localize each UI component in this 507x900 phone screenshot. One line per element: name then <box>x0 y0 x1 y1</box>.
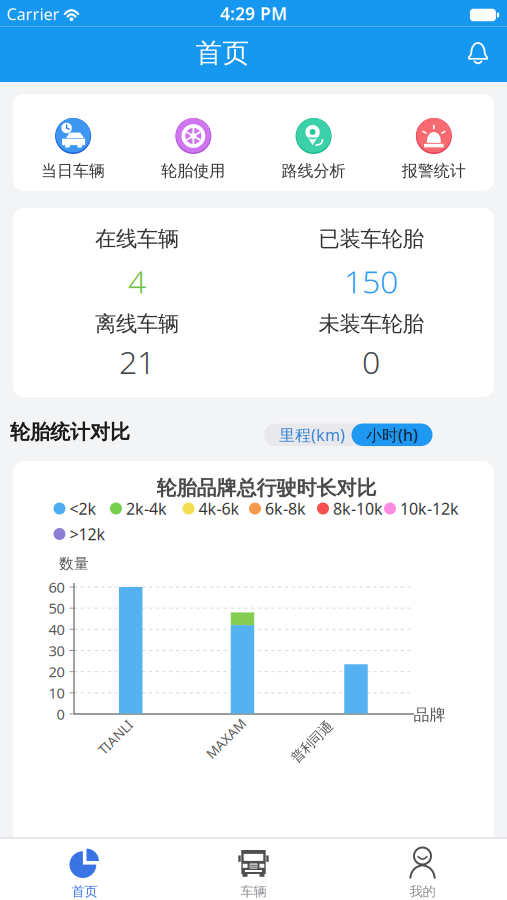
staticText: 未装车轮胎 <box>318 311 423 337</box>
staticText: MAXAM <box>201 730 251 747</box>
staticText: 21 <box>119 340 155 383</box>
staticText: 数量 <box>59 554 89 572</box>
staticText: 我的 <box>409 883 435 900</box>
button[interactable]: 我的 <box>338 841 507 899</box>
staticText: 4k-6k <box>199 498 240 519</box>
staticText: 0 <box>56 704 64 724</box>
button[interactable]: 首页 <box>0 841 169 899</box>
staticText: 20 <box>48 662 64 681</box>
staticText: 40 <box>48 620 64 639</box>
staticText: 30 <box>48 641 64 660</box>
staticText: 4 <box>128 260 146 302</box>
staticText: 在线车辆 <box>95 226 179 252</box>
button[interactable]: 车辆 <box>169 841 338 899</box>
staticText: 普利司通 <box>286 734 338 750</box>
staticText: 6k-8k <box>265 498 306 519</box>
staticText: 轮胎统计对比 <box>10 420 130 444</box>
staticText: Carrier <box>6 3 59 25</box>
button[interactable]: 路线分析 <box>253 94 374 191</box>
staticText: 首页 <box>195 37 249 69</box>
staticText: 离线车辆 <box>95 311 179 337</box>
button[interactable]: 轮胎使用 <box>133 94 253 191</box>
button[interactable] <box>458 33 498 73</box>
staticText: 轮胎使用 <box>161 161 225 181</box>
staticText: 当日车辆 <box>41 161 105 181</box>
staticText: 8k-10k <box>333 498 383 519</box>
staticText: 路线分析 <box>282 161 346 181</box>
staticText: 50 <box>48 598 64 618</box>
staticText: 2k-4k <box>126 498 167 519</box>
button[interactable]: 报警统计 <box>374 94 494 191</box>
button[interactable]: 小时(h) <box>351 424 432 446</box>
staticText: 0 <box>362 340 380 383</box>
staticText: 小时(h) <box>366 424 418 445</box>
button[interactable]: 里程(km) <box>264 424 432 446</box>
staticText: 首页 <box>71 883 97 900</box>
staticText: TIANLI <box>94 728 137 746</box>
staticText: 品牌 <box>413 705 445 725</box>
staticText: 报警统计 <box>402 161 466 181</box>
staticText: >12k <box>69 523 105 545</box>
staticText: 60 <box>48 577 64 597</box>
staticText: 150 <box>344 260 398 302</box>
staticText: 4:29 PM <box>220 2 287 25</box>
staticText: 车辆 <box>240 883 266 900</box>
staticText: 轮胎品牌总行驶时长对比 <box>157 476 377 500</box>
staticText: 已装车轮胎 <box>318 226 423 252</box>
button[interactable]: 当日车辆 <box>13 94 133 191</box>
staticText: <2k <box>69 498 96 519</box>
staticText: 10k-12k <box>400 498 459 519</box>
staticText: 里程(km) <box>279 424 345 445</box>
staticText: 10 <box>48 683 64 703</box>
